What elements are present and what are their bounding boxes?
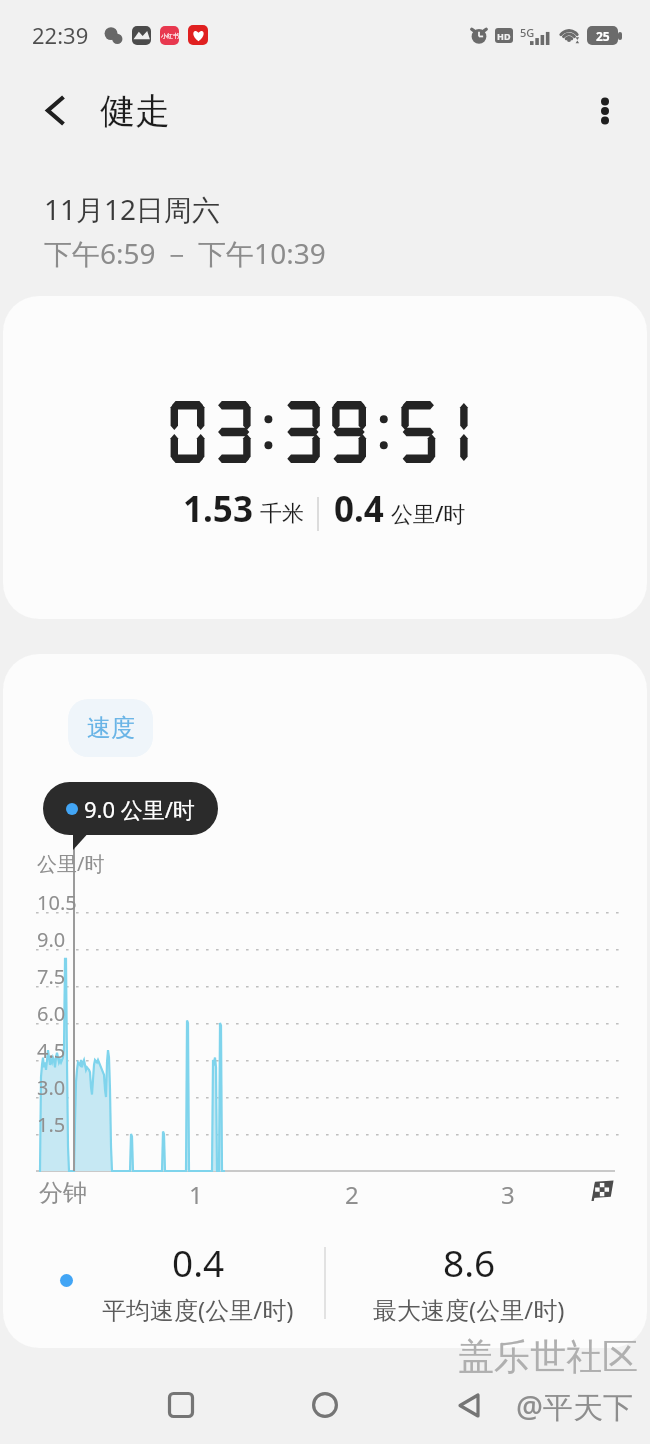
staticText: 10.5	[37, 889, 77, 916]
staticText: 25	[596, 28, 610, 44]
staticText: 6.0	[37, 1000, 66, 1027]
staticText: 平均速度(公里/时)	[102, 1293, 294, 1326]
staticText: 公里/时	[37, 850, 105, 877]
staticText: 下午6:59 － 下午10:39	[44, 234, 326, 272]
staticText: 5G	[520, 25, 535, 40]
staticText: @平天下	[516, 1386, 633, 1427]
staticText: 3	[501, 1178, 515, 1211]
button[interactable]: Back	[28, 83, 82, 137]
button[interactable]: 速度	[68, 699, 153, 757]
staticText: 4.5	[37, 1037, 66, 1064]
staticText: 公里/时	[391, 498, 466, 528]
staticText: 11月12日周六	[44, 190, 221, 228]
staticText: 2	[345, 1178, 359, 1211]
staticText: 千米	[260, 500, 304, 528]
staticText: 22:39	[32, 20, 89, 50]
staticText: 1.5	[37, 1111, 66, 1138]
staticText: 0.4	[334, 485, 384, 533]
staticText: 速度	[87, 713, 135, 743]
button[interactable]: 1.53	[3, 296, 647, 619]
staticText: 小红书	[161, 32, 179, 40]
staticText: 1	[189, 1178, 203, 1211]
staticText: 0.4	[172, 1237, 225, 1287]
button[interactable]: Recent apps	[148, 1372, 214, 1438]
staticText: 9.0 公里/时	[84, 794, 195, 824]
staticText: 分钟	[39, 1178, 87, 1208]
staticText: 9.0	[37, 926, 66, 953]
staticText: 盖乐世社区	[458, 1334, 638, 1379]
button[interactable]: More options	[578, 84, 632, 138]
staticText: 最大速度(公里/时)	[373, 1293, 565, 1326]
staticText: 健走	[100, 89, 170, 133]
staticText: HD	[497, 30, 511, 42]
staticText: 3.0	[37, 1074, 66, 1101]
staticText: 8.6	[443, 1237, 496, 1287]
button[interactable]: Back	[436, 1372, 502, 1438]
staticText: 7.5	[37, 963, 66, 990]
button[interactable]: Home	[292, 1372, 358, 1438]
staticText: 1.53	[183, 485, 253, 533]
